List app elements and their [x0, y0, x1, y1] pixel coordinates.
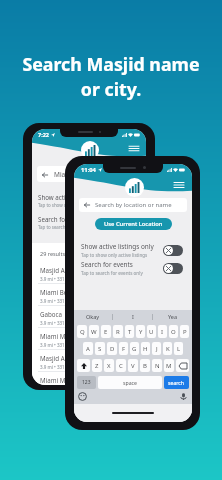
staticText: E: [104, 328, 108, 336]
staticText: M: [166, 362, 172, 370]
button[interactable]: Gaboca: [32, 306, 146, 328]
button[interactable]: D: [107, 342, 117, 355]
staticText: J: [156, 345, 158, 353]
staticText: 29 results found: [40, 250, 82, 257]
staticText: O: [171, 328, 176, 336]
staticText: F: [122, 345, 126, 353]
staticText: 11:04: [81, 166, 96, 174]
button[interactable]: E: [101, 325, 111, 338]
button[interactable]: F: [119, 342, 128, 355]
button[interactable]: Shift: [77, 359, 90, 372]
button[interactable]: Microphone: [179, 392, 188, 401]
button[interactable]: H: [141, 342, 150, 355]
button[interactable]: Miami Beach Masjid: [32, 284, 146, 306]
button[interactable]: Search for events: [38, 215, 140, 230]
button[interactable]: K: [163, 342, 172, 355]
button[interactable]: Search for events: [81, 260, 183, 276]
button[interactable]: Masjid Al Fajr: [32, 262, 146, 284]
staticText: Show active listings only: [38, 193, 109, 201]
button[interactable]: Miami: [37, 166, 141, 182]
staticText: N: [155, 362, 160, 370]
staticText: U: [149, 328, 154, 336]
staticText: Tap to show only active listings: [81, 252, 148, 258]
staticText: B: [143, 362, 147, 370]
staticText: Tap to search for events only: [38, 224, 98, 230]
button[interactable]: T: [125, 325, 134, 338]
button[interactable]: Miami Mosque: [32, 328, 146, 350]
staticText: Search Masjid name or city.: [22, 52, 200, 101]
button[interactable]: Emoji: [78, 392, 87, 401]
button[interactable]: U: [147, 325, 156, 338]
button[interactable]: Toggle: [163, 245, 183, 256]
button[interactable]: L: [174, 342, 183, 355]
button[interactable]: X: [104, 359, 114, 372]
staticText: K: [166, 345, 170, 353]
staticText: H: [143, 345, 148, 353]
button[interactable]: G: [130, 342, 139, 355]
staticText: Miami: [54, 170, 73, 179]
button[interactable]: I: [158, 325, 167, 338]
button[interactable]: Delete: [176, 359, 189, 372]
staticText: T: [128, 328, 132, 336]
button[interactable]: Use Current Location: [104, 218, 163, 230]
staticText: 3.9 mi • 331 reviews: [40, 364, 82, 370]
button[interactable]: V: [128, 359, 138, 372]
button[interactable]: N: [152, 359, 162, 372]
button[interactable]: M: [164, 359, 174, 372]
staticText: Search for events: [38, 215, 89, 223]
button[interactable]: Menu: [174, 181, 184, 189]
staticText: Masjid Al Fajr: [40, 266, 79, 274]
staticText: D: [110, 345, 115, 353]
button[interactable]: S: [95, 342, 105, 355]
staticText: 3.9 mi • 331 reviews: [40, 320, 82, 326]
button[interactable]: Search by location or name: [79, 198, 187, 212]
staticText: Tap to show only active listings: [38, 202, 102, 208]
staticText: Miami Masjid: [40, 376, 79, 384]
button[interactable]: Menu: [129, 145, 139, 152]
button[interactable]: Toggle: [123, 218, 140, 228]
button[interactable]: A: [83, 342, 93, 355]
staticText: A: [86, 345, 90, 353]
button[interactable]: 123: [77, 376, 96, 389]
button[interactable]: Show active listings only: [81, 242, 183, 258]
staticText: Show active listings only: [81, 242, 154, 251]
button[interactable]: Y: [136, 325, 145, 338]
staticText: 3.9 mi • 331 reviews: [40, 276, 82, 282]
button[interactable]: search: [164, 376, 189, 389]
button[interactable]: C: [116, 359, 126, 372]
button[interactable]: Yea: [153, 310, 192, 323]
button[interactable]: P: [180, 325, 189, 338]
button[interactable]: O: [169, 325, 178, 338]
staticText: V: [131, 362, 135, 370]
staticText: 3.9 mi • 331 reviews: [40, 342, 82, 348]
button[interactable]: R: [113, 325, 123, 338]
staticText: Miami Mosque: [40, 332, 84, 340]
staticText: X: [107, 362, 111, 370]
staticText: 3.9 mi • 331 reviews: [40, 298, 82, 304]
button[interactable]: Miami Masjid: [32, 372, 146, 385]
button[interactable]: Okay: [74, 310, 112, 323]
staticText: Use Current Location: [104, 220, 163, 228]
staticText: Okay: [86, 313, 100, 320]
button[interactable]: Z: [92, 359, 102, 372]
button[interactable]: I: [113, 310, 152, 323]
staticText: space: [123, 379, 138, 386]
button[interactable]: space: [98, 376, 162, 389]
staticText: Miami Beach Masjid: [40, 288, 99, 296]
button[interactable]: Q: [77, 325, 87, 338]
staticText: S: [98, 345, 102, 353]
button[interactable]: W: [89, 325, 99, 338]
staticText: 7:22: [38, 131, 49, 138]
staticText: Y: [139, 328, 143, 336]
button[interactable]: Show active listings only: [38, 193, 140, 208]
button[interactable]: Toggle: [123, 196, 140, 206]
staticText: Masjid Al-Ansar: [40, 354, 85, 362]
button[interactable]: B: [140, 359, 150, 372]
button[interactable]: Masjid Al-Ansar: [32, 350, 146, 372]
staticText: Tap to search for events only: [81, 270, 143, 276]
button[interactable]: Toggle: [163, 263, 183, 274]
staticText: G: [132, 345, 137, 353]
staticText: L: [177, 345, 181, 353]
button[interactable]: J: [152, 342, 161, 355]
staticText: Yea: [168, 313, 178, 320]
